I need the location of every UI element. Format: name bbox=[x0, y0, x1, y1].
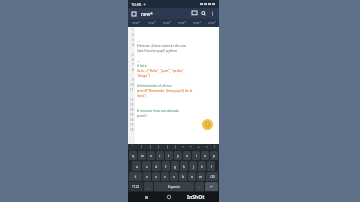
staticText: ⌫ bbox=[210, 175, 215, 179]
button[interactable]: ⌫ bbox=[206, 172, 218, 181]
staticText: lista Función pop() python bbox=[137, 48, 178, 52]
button[interactable]: s bbox=[142, 161, 151, 171]
button[interactable]: j bbox=[189, 161, 197, 171]
staticText: [ bbox=[167, 145, 168, 149]
staticText: b bbox=[182, 174, 185, 179]
button[interactable]: new* bbox=[204, 19, 219, 27]
button[interactable]: ⇧ bbox=[129, 172, 142, 181]
button[interactable]: v bbox=[170, 172, 178, 181]
button[interactable]: u bbox=[183, 151, 191, 160]
staticText: new* bbox=[163, 21, 171, 25]
button[interactable]: , bbox=[144, 182, 153, 191]
staticText: Espacio bbox=[168, 184, 181, 189]
button[interactable]: ] bbox=[171, 144, 179, 150]
staticText: w bbox=[141, 153, 144, 158]
button[interactable]: ?123 bbox=[129, 182, 143, 191]
button[interactable]: Espacio bbox=[154, 182, 194, 191]
button[interactable]: h bbox=[180, 161, 188, 171]
staticText: 10:08 bbox=[131, 2, 142, 7]
button[interactable]: Recents bbox=[142, 193, 150, 201]
button[interactable]: Search bbox=[200, 10, 207, 17]
staticText: 15 bbox=[130, 113, 134, 117]
button[interactable]: m bbox=[197, 172, 205, 181]
staticText: n bbox=[191, 174, 194, 179]
button[interactable]: + bbox=[195, 144, 203, 150]
staticText: 11 bbox=[130, 88, 134, 92]
staticText: "diego"] bbox=[137, 73, 150, 77]
button[interactable]: y bbox=[174, 151, 182, 160]
button[interactable]: " bbox=[128, 144, 137, 150]
staticText: lista = ["Hola", "juan", "pedro", bbox=[137, 68, 185, 72]
staticText: # mostrar lista actualizada bbox=[137, 108, 179, 112]
button[interactable]: c bbox=[161, 172, 169, 181]
button[interactable]: Tabs bbox=[191, 10, 198, 17]
button[interactable]: x bbox=[152, 172, 160, 181]
button[interactable]: d bbox=[152, 161, 161, 171]
staticText: e bbox=[150, 153, 152, 158]
button[interactable]: z bbox=[143, 172, 151, 181]
staticText: 7 bbox=[132, 63, 134, 67]
button[interactable]: new* bbox=[189, 19, 204, 27]
staticText: i bbox=[196, 153, 197, 158]
staticText: 13 bbox=[130, 103, 134, 107]
staticText: 2 bbox=[132, 33, 134, 37]
button[interactable]: More options bbox=[209, 10, 216, 17]
button[interactable]: t bbox=[165, 151, 173, 160]
staticText: new* bbox=[148, 21, 156, 25]
button[interactable]: } bbox=[155, 144, 163, 150]
button[interactable]: Home bbox=[165, 193, 173, 201]
staticText: x bbox=[155, 174, 157, 179]
button[interactable]: < bbox=[179, 144, 187, 150]
button[interactable]: | bbox=[137, 144, 146, 150]
button[interactable]: i bbox=[192, 151, 200, 160]
button[interactable]: p bbox=[210, 151, 218, 160]
button[interactable]: / bbox=[211, 144, 219, 150]
button[interactable]: a bbox=[132, 161, 141, 171]
button[interactable]: . bbox=[195, 182, 204, 191]
button[interactable]: new* bbox=[174, 19, 189, 27]
staticText: t bbox=[168, 153, 170, 158]
staticText: / bbox=[214, 145, 216, 149]
staticText: p bbox=[213, 153, 216, 158]
staticText: | bbox=[141, 145, 143, 149]
button[interactable]: Menu bbox=[131, 11, 137, 17]
staticText: --- bbox=[137, 58, 141, 62]
button[interactable]: n bbox=[188, 172, 196, 181]
button[interactable]: g bbox=[171, 161, 179, 171]
button[interactable]: > bbox=[187, 144, 195, 150]
button[interactable]: f bbox=[162, 161, 170, 171]
button[interactable]: k bbox=[198, 161, 206, 171]
staticText: --- bbox=[137, 38, 141, 42]
staticText: z bbox=[146, 174, 148, 179]
button[interactable]: new* bbox=[128, 19, 144, 27]
button[interactable]: [ bbox=[163, 144, 171, 150]
staticText: Eliminar ultimo caracter de una bbox=[137, 43, 186, 47]
staticText: 3 bbox=[132, 38, 134, 42]
button[interactable]: l bbox=[207, 161, 215, 171]
staticText: . bbox=[199, 184, 200, 189]
staticText: ⇧ bbox=[134, 175, 137, 179]
staticText: { bbox=[150, 145, 152, 149]
button[interactable]: e bbox=[147, 151, 155, 160]
button[interactable]: o bbox=[201, 151, 209, 160]
staticText: 16 bbox=[130, 118, 134, 122]
staticText: 18 bbox=[130, 128, 134, 132]
button[interactable]: q bbox=[129, 151, 137, 160]
button[interactable]: Action bbox=[202, 119, 213, 130]
button[interactable]: r bbox=[156, 151, 164, 160]
staticText: 5 bbox=[132, 53, 134, 57]
staticText: ↵ bbox=[210, 185, 213, 189]
button[interactable]: new* bbox=[144, 19, 159, 27]
button[interactable]: = bbox=[203, 144, 211, 150]
button[interactable]: { bbox=[146, 144, 155, 150]
staticText: 10 bbox=[130, 83, 134, 87]
button[interactable]: new* bbox=[159, 19, 174, 27]
button[interactable]: w bbox=[138, 151, 146, 160]
button[interactable]: b bbox=[179, 172, 187, 181]
button[interactable]: ↵ bbox=[205, 182, 218, 191]
staticText: u bbox=[186, 153, 189, 158]
staticText: c bbox=[164, 174, 166, 179]
staticText: #eliminando el ultimo bbox=[137, 83, 172, 87]
staticText: 9 bbox=[132, 78, 134, 82]
staticText: g bbox=[174, 164, 177, 169]
